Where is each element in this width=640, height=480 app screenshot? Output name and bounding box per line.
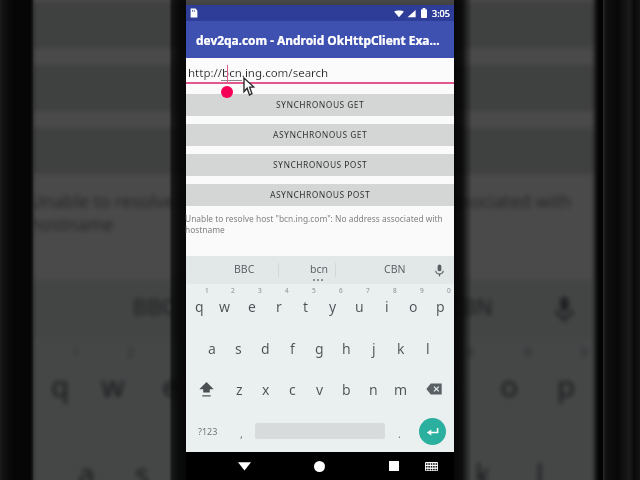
staticText: q [51,365,70,405]
button[interactable] [141,338,198,426]
button[interactable] [346,284,373,326]
staticText: m [394,380,408,399]
button[interactable] [59,426,114,480]
button[interactable] [198,338,255,426]
staticText: w [219,297,231,316]
button[interactable]: , [230,410,252,452]
button[interactable] [400,284,427,326]
button[interactable] [481,338,538,426]
button[interactable]: SYNCHRONOUS GET [186,94,454,116]
button[interactable]: Backspace [414,368,454,410]
button[interactable]: ASYNCHRONOUS GET [32,2,595,48]
button[interactable] [255,338,311,426]
button[interactable]: z [226,368,252,410]
staticText: j [372,339,376,358]
button[interactable] [427,284,454,326]
button[interactable] [360,326,387,368]
staticText: 9 [420,286,424,295]
staticText: w [101,365,126,405]
staticText: k [397,339,405,358]
button[interactable] [319,284,346,326]
button[interactable]: BBC [74,279,234,338]
staticText: x [262,380,270,399]
button[interactable]: v [306,368,333,410]
button[interactable] [265,284,292,326]
button[interactable] [199,326,225,368]
staticText: SYNCHRONOUS POST [273,159,368,171]
button[interactable] [387,326,414,368]
button[interactable] [171,426,227,480]
button[interactable]: bcn [234,279,389,338]
button[interactable]: bcn [282,256,356,284]
button[interactable]: Voice input [424,256,454,284]
button[interactable]: Voice input [532,279,595,338]
button[interactable]: BBC [206,256,282,284]
button[interactable]: . [388,410,410,452]
staticText: g [315,339,324,358]
button[interactable]: Space [252,410,388,452]
button[interactable]: SYNCHRONOUS POST [186,154,454,176]
button[interactable] [368,338,425,426]
button[interactable] [292,284,319,326]
staticText: a [208,339,216,358]
button[interactable]: ?123 [186,410,230,452]
button[interactable] [212,284,238,326]
button[interactable]: CBN [358,256,432,284]
button[interactable] [306,326,333,368]
button[interactable]: Home [302,452,336,480]
button[interactable]: SYNCHRONOUS POST [32,65,595,111]
button[interactable] [538,338,595,426]
button[interactable]: c [279,368,306,410]
button[interactable]: n [360,368,387,410]
button[interactable]: b [333,368,360,410]
staticText: j [423,453,431,480]
button[interactable] [32,338,87,426]
button[interactable] [454,426,511,480]
button[interactable]: CBN [393,279,549,338]
button[interactable]: Switch keyboard [414,452,448,480]
button[interactable]: Back [227,452,261,480]
staticText: y [332,365,349,405]
staticText: 3:05 [432,7,450,19]
staticText: b [342,380,351,399]
button[interactable] [284,426,341,480]
staticText: k [475,453,492,480]
button[interactable] [114,426,171,480]
button[interactable] [341,426,397,480]
staticText: ?123 [198,425,218,437]
staticText: 1 [205,286,209,295]
button[interactable] [186,284,212,326]
button[interactable] [87,338,141,426]
button[interactable]: x [252,368,279,410]
staticText: p [436,297,445,316]
button[interactable] [279,326,306,368]
staticText: y [329,297,337,316]
button[interactable] [373,284,400,326]
staticText: i [385,297,389,316]
button[interactable]: ASYNCHRONOUS POST [32,128,595,174]
staticText: BBC [234,262,255,276]
button[interactable] [227,426,284,480]
button[interactable] [414,326,441,368]
button[interactable]: Recents [377,452,411,480]
button[interactable] [311,338,368,426]
button[interactable] [252,326,279,368]
button[interactable] [333,326,360,368]
button[interactable] [397,426,454,480]
button[interactable]: Enter [419,418,446,445]
button[interactable] [425,338,481,426]
button[interactable]: ASYNCHRONOUS GET [186,124,454,146]
staticText: u [355,297,364,316]
button[interactable]: Shift [186,368,226,410]
staticText: , [240,426,243,441]
staticText: . [398,426,401,441]
button[interactable]: m [387,368,414,410]
staticText: i [450,365,458,405]
button[interactable] [238,284,265,326]
staticText: e [248,297,256,316]
button[interactable]: ASYNCHRONOUS POST [186,184,454,206]
button[interactable] [225,326,252,368]
